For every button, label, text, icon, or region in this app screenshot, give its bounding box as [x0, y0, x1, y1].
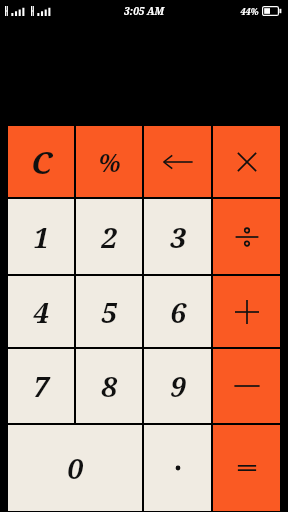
button[interactable]: Equals [213, 425, 280, 511]
button[interactable]: 6 [144, 276, 211, 347]
staticText: 3:05 AM [124, 4, 164, 18]
button[interactable]: % [76, 126, 142, 197]
button[interactable]: Backspace [144, 126, 211, 197]
button[interactable]: Divide [213, 199, 280, 274]
button[interactable]: C [8, 126, 74, 197]
button[interactable]: 2 [76, 199, 142, 274]
staticText: 44% [240, 5, 259, 17]
button[interactable]: Decimal point [144, 425, 211, 511]
button[interactable]: 4 [8, 276, 74, 347]
staticText: 1 [33, 218, 49, 256]
staticText: % [98, 145, 121, 179]
button[interactable]: 7 [8, 349, 74, 423]
staticText: 9 [170, 367, 186, 405]
staticText: 5 [101, 293, 117, 331]
button[interactable]: Multiply [213, 126, 280, 197]
button[interactable]: 5 [76, 276, 142, 347]
button[interactable]: Minus [213, 349, 280, 423]
button[interactable]: 1 [8, 199, 74, 274]
button[interactable]: 0 [8, 425, 142, 511]
staticText: 0 [67, 449, 83, 487]
button[interactable]: 8 [76, 349, 142, 423]
button[interactable]: 3 [144, 199, 211, 274]
button[interactable]: Plus [213, 276, 280, 347]
staticText: 8 [101, 367, 117, 405]
staticText: 6 [170, 293, 186, 331]
button[interactable]: 9 [144, 349, 211, 423]
staticText: 4 [33, 293, 49, 331]
staticText: 3 [170, 218, 186, 256]
staticText: C [31, 141, 52, 183]
staticText: 7 [33, 367, 49, 405]
staticText: 2 [101, 218, 117, 256]
